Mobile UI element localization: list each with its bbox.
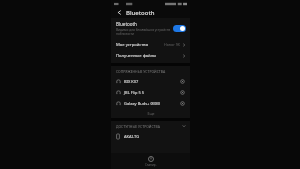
staticText: Bluetooth <box>126 9 155 17</box>
staticText: Galaxy Buds+ (80B) <box>124 101 160 106</box>
staticText: BIX K07 <box>124 79 139 84</box>
staticText: Honor 9X <box>164 42 180 47</box>
button[interactable]: Device settings <box>179 78 186 85</box>
button[interactable]: Мое устройство <box>111 39 190 50</box>
staticText: Bluetooth <box>116 21 137 27</box>
button[interactable]: JBL Flip 5 S <box>111 87 190 98</box>
button[interactable]: Еще <box>111 109 190 118</box>
button[interactable]: Back <box>115 8 124 17</box>
staticText: ДОСТУПНЫЕ УСТРОЙСТВА <box>116 124 160 129</box>
button[interactable]: BIX K07 <box>111 76 190 87</box>
button[interactable]: Device settings <box>179 89 186 96</box>
button[interactable]: AKAI-TG <box>111 131 190 142</box>
staticText: Сканир. <box>145 163 157 167</box>
button[interactable]: Scan <box>111 153 190 169</box>
staticText: JBL Flip 5 S <box>124 90 144 95</box>
staticText: Видимо для ближайших устройств поблизост… <box>116 28 171 36</box>
button[interactable]: Bluetooth <box>111 18 190 39</box>
staticText: СОПРЯЖЕННЫЕ УСТРОЙСТВА <box>116 69 166 74</box>
button[interactable]: Device settings <box>179 100 186 107</box>
button[interactable]: Galaxy Buds+ (80B) <box>111 98 190 109</box>
staticText: AKAI-TG <box>124 134 140 139</box>
button[interactable]: Bluetooth toggle <box>173 25 186 32</box>
staticText: Полученные файлы <box>116 53 157 59</box>
button[interactable]: Полученные файлы <box>111 50 190 61</box>
staticText: Мое устройство <box>116 42 149 48</box>
staticText: Еще <box>147 111 155 116</box>
